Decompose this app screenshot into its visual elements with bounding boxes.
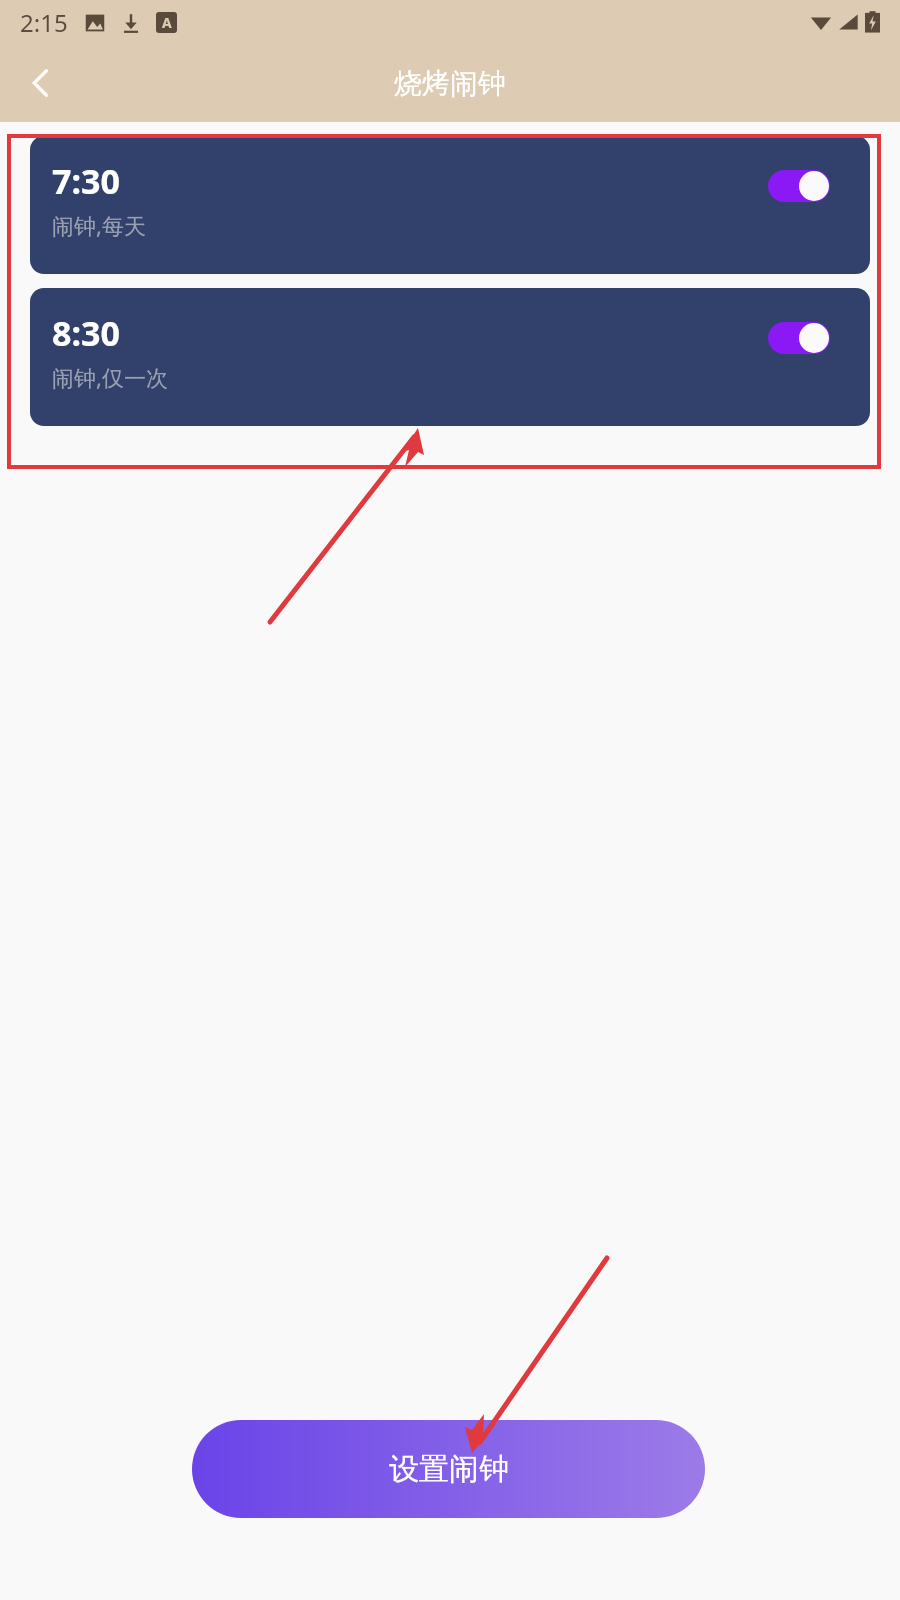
staticText: 7:30 xyxy=(52,158,120,204)
staticText: 8:30 xyxy=(52,310,120,356)
staticText: A xyxy=(162,13,172,32)
button[interactable]: 设置闹钟 xyxy=(192,1420,705,1518)
staticText: 2:15 xyxy=(20,6,68,39)
button[interactable]: 8:30 xyxy=(30,288,870,426)
button[interactable]: Toggle alarm xyxy=(768,322,830,354)
button[interactable]: Back xyxy=(10,52,72,114)
staticText: 闹钟,仅一次 xyxy=(52,362,168,392)
staticText: 闹钟,每天 xyxy=(52,210,146,240)
staticText: 设置闹钟 xyxy=(389,1450,509,1488)
button[interactable]: Toggle alarm xyxy=(768,170,830,202)
button[interactable]: 7:30 xyxy=(30,136,870,274)
staticText: 烧烤闹钟 xyxy=(394,66,506,101)
